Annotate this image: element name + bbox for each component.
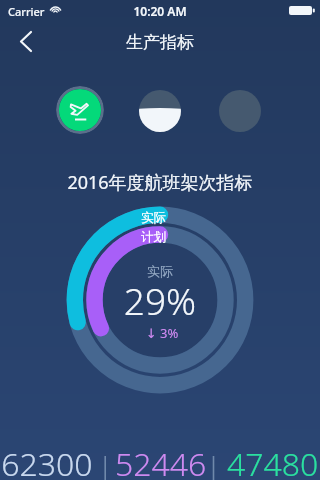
button[interactable]: Passengers [139,90,181,132]
button[interactable]: Cargo [219,90,261,132]
staticText: 2016年度航班架次指标 [0,170,320,195]
staticText: Carrier [8,4,45,19]
button[interactable]: Flights [56,86,104,134]
staticText: 实际 [0,263,320,279]
staticText: 47480 [227,442,319,480]
staticText: 10:20 AM [0,3,320,19]
staticText: 实际 [141,210,166,226]
staticText: 生产指标 [0,32,320,53]
staticText: 29% [0,275,320,325]
staticText: 162300 [0,442,93,480]
button[interactable]: Back [10,24,42,60]
staticText: 计划 [141,229,166,245]
staticText: ↓ 3% [2,324,320,342]
staticText: 52446 [115,442,207,480]
